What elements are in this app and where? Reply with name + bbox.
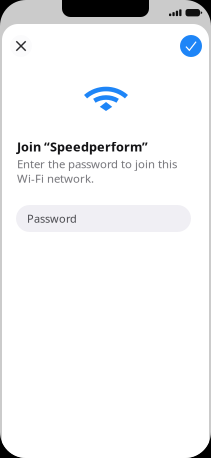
button[interactable]: Join <box>180 35 202 57</box>
button[interactable]: Cancel <box>10 35 32 57</box>
staticText: Password <box>27 211 77 226</box>
staticText: Enter the password to join this Wi-Fi ne… <box>17 156 177 186</box>
staticText: Join “Speedperform” <box>17 138 148 155</box>
